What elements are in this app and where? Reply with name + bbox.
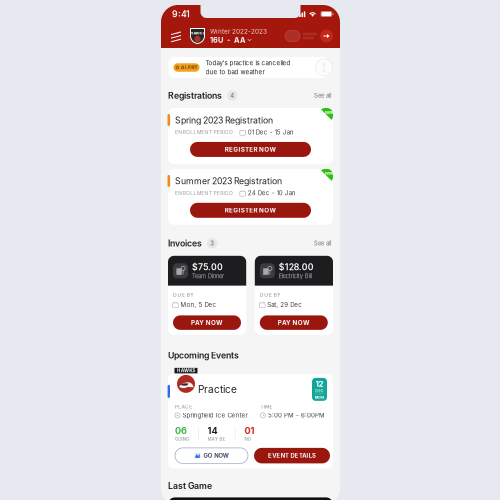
staticText: PLACE xyxy=(175,404,192,410)
staticText: 01 Dec - 15 Jan xyxy=(248,128,294,136)
staticText: ENROLLMENT PERIOD xyxy=(175,129,233,135)
staticText: MAY BE xyxy=(208,437,226,442)
staticText: See all xyxy=(314,240,331,247)
staticText: $75.00 xyxy=(192,262,223,272)
staticText: Last Game xyxy=(168,481,212,491)
staticText: EVENT DETAILS xyxy=(268,452,316,459)
button[interactable]: ALERT xyxy=(168,57,332,78)
staticText: New xyxy=(325,171,333,176)
staticText: Electricity Bill xyxy=(279,273,312,280)
button[interactable]: See all xyxy=(312,238,333,249)
staticText: GO NOW xyxy=(203,452,229,459)
button[interactable]: See all xyxy=(312,90,333,101)
staticText: MON xyxy=(315,395,324,400)
staticText: ENROLLMENT PERIOD xyxy=(175,190,233,196)
staticText: ALERT xyxy=(181,64,197,71)
staticText: REGISTER NOW xyxy=(225,206,276,214)
staticText: 12 xyxy=(315,379,323,389)
button[interactable]: REGISTER NOW xyxy=(190,203,311,218)
button[interactable]: EVENT DETAILS xyxy=(254,448,330,463)
staticText: Spring 2023 Registration xyxy=(175,115,273,125)
staticText: 24 Dec - 10 Jan xyxy=(248,189,296,197)
button[interactable]: Menu xyxy=(170,31,182,41)
staticText: due to bad weather xyxy=(205,68,264,76)
staticText: TIME xyxy=(260,404,272,410)
button[interactable]: REGISTER NOW xyxy=(190,142,311,157)
staticText: REGISTER NOW xyxy=(225,146,276,153)
staticText: Winter 2022-2023 xyxy=(210,27,267,35)
staticText: Registrations xyxy=(168,90,222,101)
button[interactable]: GO NOW xyxy=(175,448,248,463)
staticText: 4 xyxy=(230,92,234,99)
staticText: See all xyxy=(314,92,331,99)
staticText: 9:41 xyxy=(172,9,190,19)
staticText: New xyxy=(325,110,333,115)
staticText: Today's practice is cancelled xyxy=(205,59,290,67)
staticText: $128.00 xyxy=(279,262,314,272)
staticText: Mon, 5 Dec xyxy=(180,301,216,308)
staticText: NO xyxy=(244,437,251,442)
staticText: 5:00 PM - 6:00PM xyxy=(268,412,325,419)
button[interactable]: PAY NOW xyxy=(173,315,241,330)
staticText: PAY NOW xyxy=(191,319,223,326)
staticText: 3 xyxy=(210,240,214,247)
staticText: GOING xyxy=(175,437,189,442)
button[interactable]: Next team xyxy=(320,29,333,42)
staticText: 16U - AA xyxy=(210,36,245,45)
staticText: Springfield Ice Center xyxy=(182,412,247,419)
staticText: Practice xyxy=(198,383,237,395)
staticText: DEC xyxy=(315,389,324,393)
staticText: Upcoming Events xyxy=(168,350,239,361)
staticText: Summer 2023 Registration xyxy=(175,176,282,186)
staticText: Team Dinner xyxy=(192,273,224,280)
staticText: PAY NOW xyxy=(278,319,310,326)
staticText: HAWKS xyxy=(190,31,204,35)
button[interactable]: PAY NOW xyxy=(260,315,328,330)
staticText: 14 xyxy=(208,425,218,436)
staticText: Invoices xyxy=(168,238,202,249)
staticText: Sat, 29 Dec xyxy=(267,301,302,308)
staticText: DUE BY xyxy=(260,292,281,298)
staticText: DUE BY xyxy=(173,292,194,298)
staticText: HAWKS xyxy=(177,368,195,373)
staticText: 01 xyxy=(244,425,254,436)
staticText: 06 xyxy=(175,425,187,436)
